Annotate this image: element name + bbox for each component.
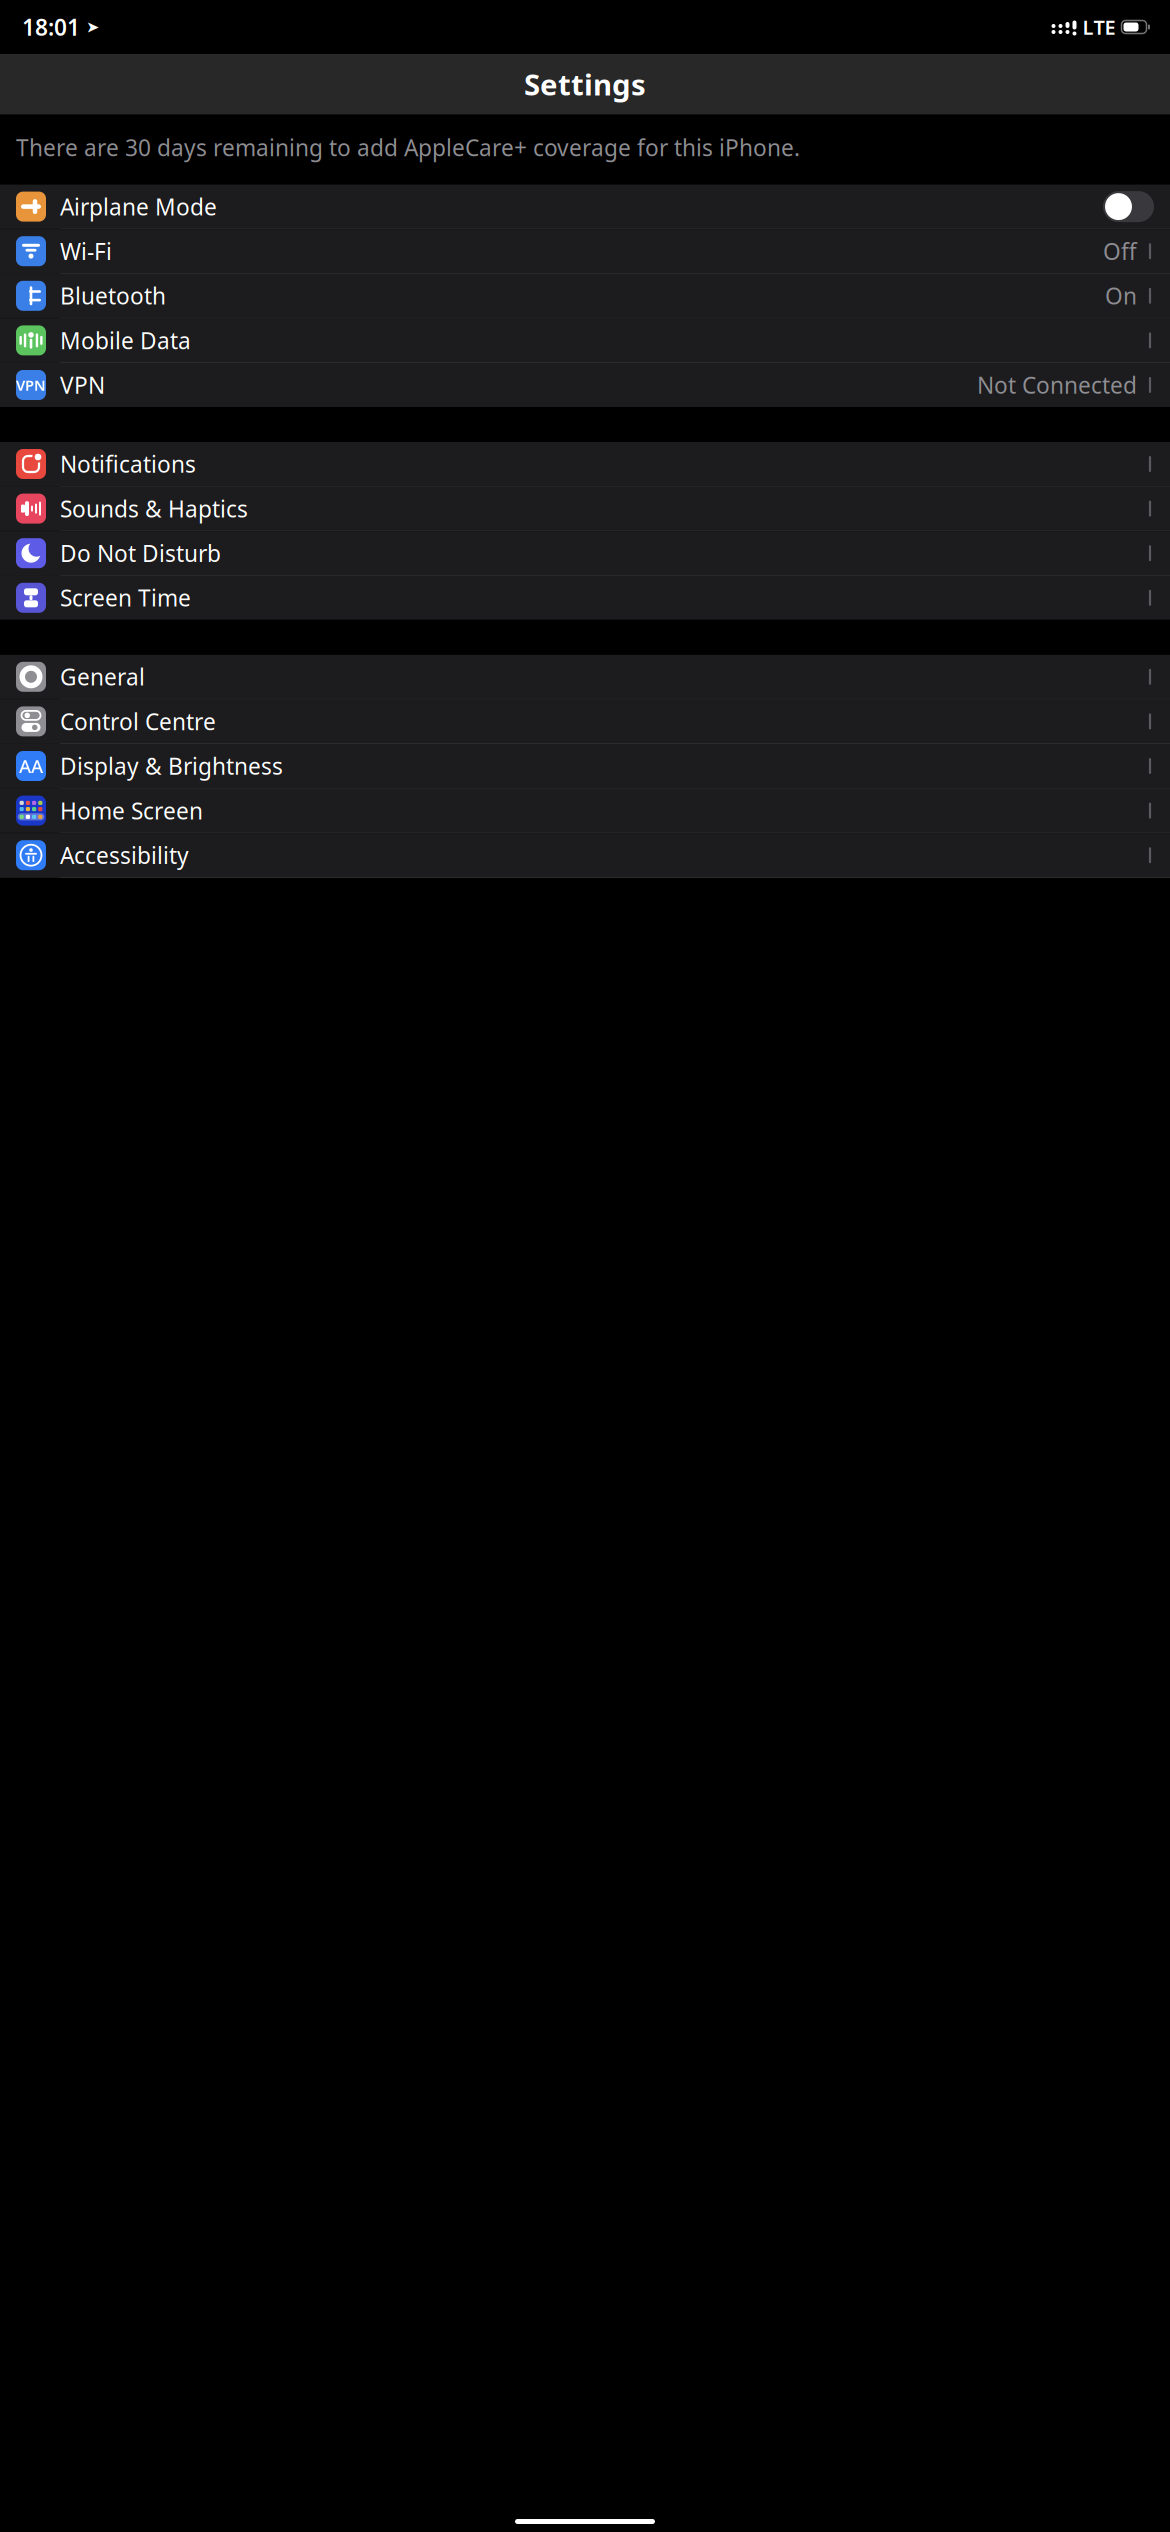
staticText: Accessibility (60, 840, 189, 870)
button[interactable]: Bluetooth (0, 274, 1170, 318)
staticText: Screen Time (60, 583, 191, 613)
button[interactable]: Wi-Fi (0, 229, 1170, 273)
staticText: ➤ (80, 18, 99, 36)
staticText: 18:01 (22, 12, 80, 42)
staticText: Control Centre (60, 706, 216, 736)
button[interactable]: Home Screen (0, 789, 1170, 833)
staticText: Bluetooth (60, 281, 166, 311)
staticText: Wi-Fi (60, 236, 112, 266)
button[interactable]: Airplane Mode (0, 185, 1170, 229)
staticText: On (1105, 281, 1137, 311)
staticText: VPN (60, 370, 105, 400)
staticText: Settings (524, 64, 646, 103)
button[interactable]: AA (0, 744, 1170, 788)
button[interactable]: Sounds & Haptics (0, 487, 1170, 531)
button[interactable]: Do Not Disturb (0, 531, 1170, 575)
staticText: There are 30 days remaining to add Apple… (16, 132, 800, 163)
staticText: Display & Brightness (60, 751, 283, 781)
staticText: Notifications (60, 449, 196, 479)
staticText: Mobile Data (60, 325, 191, 355)
button[interactable]: Control Centre (0, 699, 1170, 743)
button[interactable]: Mobile Data (0, 318, 1170, 362)
staticText: LTE (1082, 14, 1115, 40)
staticText: AA (19, 754, 43, 778)
staticText: Not Connected (977, 370, 1137, 400)
button[interactable]: VPN (0, 363, 1170, 407)
button[interactable]: Accessibility (0, 833, 1170, 877)
staticText: Do Not Disturb (60, 538, 221, 568)
staticText: Airplane Mode (60, 192, 217, 222)
button[interactable]: Notifications (0, 442, 1170, 486)
button[interactable]: Screen Time (0, 576, 1170, 620)
staticText: Home Screen (60, 796, 203, 826)
staticText: Sounds & Haptics (60, 494, 248, 524)
button[interactable]: General (0, 655, 1170, 699)
staticText: General (60, 662, 145, 692)
staticText: Off (1103, 236, 1137, 266)
staticText: VPN (16, 375, 46, 395)
